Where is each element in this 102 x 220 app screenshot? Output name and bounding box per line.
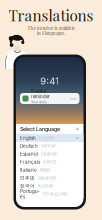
staticText: Português <box>20 188 40 199</box>
staticText: Practice reminder <box>31 89 50 99</box>
button[interactable]: Select Language <box>16 124 83 134</box>
button[interactable]: Español <box>16 150 83 158</box>
staticText: 한국어 <box>20 183 35 189</box>
staticText: ✕ <box>75 126 79 132</box>
staticText: in 8 languages. <box>37 30 65 36</box>
button[interactable]: Français <box>16 158 83 166</box>
staticText: Your daily lesson is ready <box>31 100 56 108</box>
button[interactable]: English <box>16 134 83 142</box>
staticText: Deutsch <box>20 143 38 149</box>
staticText: English <box>39 135 55 141</box>
staticText: English <box>20 135 36 141</box>
staticText: 日本語 <box>20 175 35 181</box>
staticText: Spanish <box>41 151 58 157</box>
staticText: French <box>43 159 57 165</box>
staticText: The number is available <box>27 25 74 31</box>
staticText: Français <box>20 159 40 165</box>
staticText: Español <box>20 151 38 157</box>
staticText: Translations <box>8 5 93 25</box>
button[interactable]: 한국어 <box>16 182 83 190</box>
staticText: Select Language <box>20 126 60 132</box>
staticText: German <box>41 143 57 149</box>
staticText: 9:41 <box>40 75 59 87</box>
button[interactable]: Deutsch <box>16 142 83 150</box>
staticText: ✓ <box>75 135 79 141</box>
button[interactable]: 日本語 <box>16 174 83 182</box>
staticText: Portuguese <box>43 191 67 197</box>
staticText: Japanese <box>38 175 56 181</box>
button[interactable]: Português <box>16 190 83 198</box>
staticText: Italian <box>40 167 51 173</box>
staticText: now <box>70 97 77 100</box>
staticText: Korean <box>38 183 54 189</box>
staticText: Italiano <box>20 167 37 173</box>
button[interactable]: Italiano <box>16 166 83 174</box>
